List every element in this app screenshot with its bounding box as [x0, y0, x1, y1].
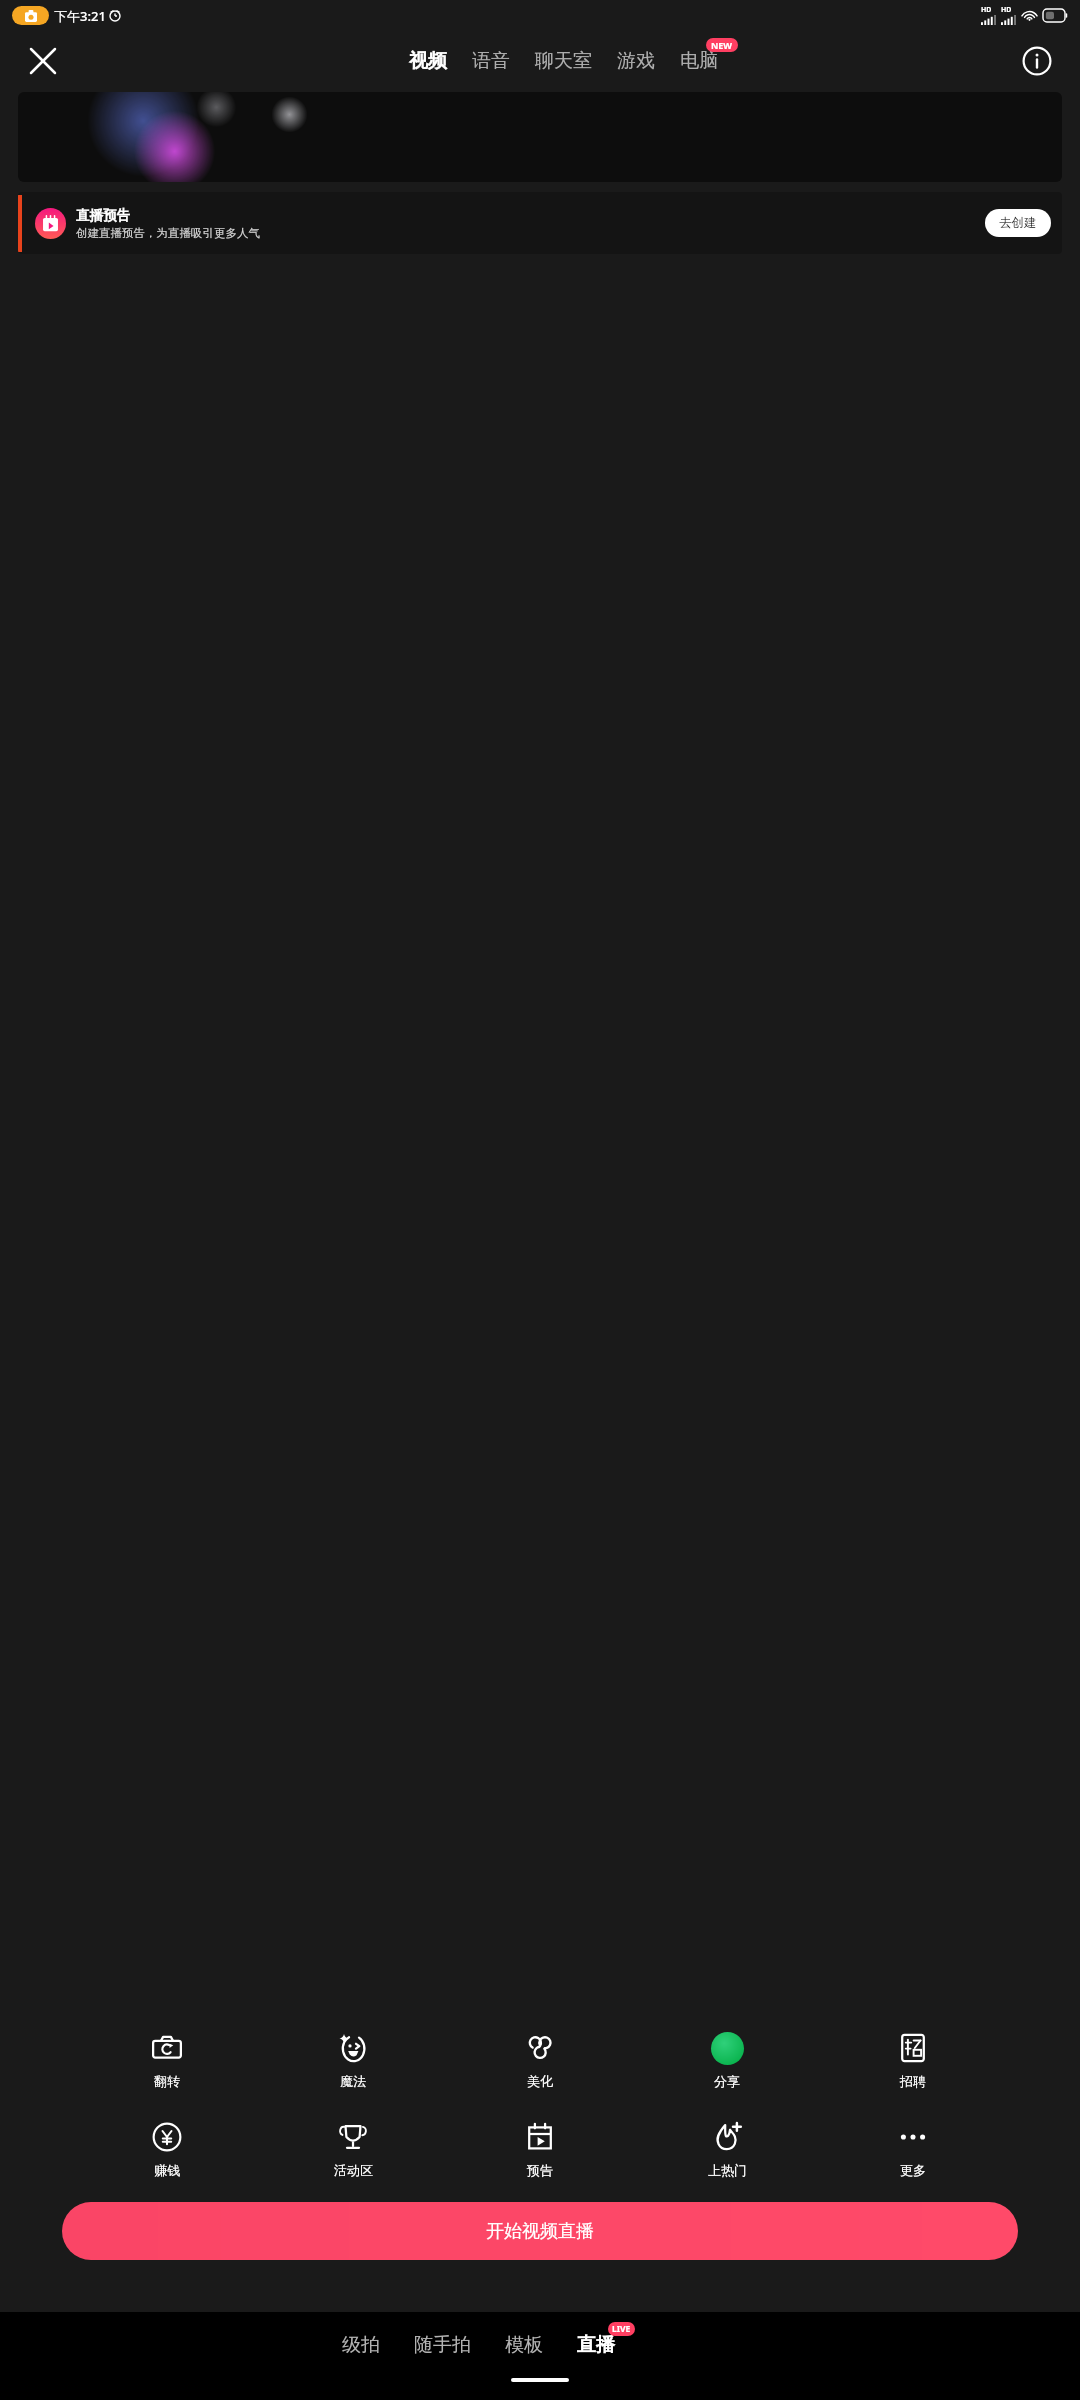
button[interactable]: 魔法 — [319, 2028, 387, 2091]
button[interactable]: 赚钱 — [133, 2117, 201, 2180]
button[interactable]: 预告 — [506, 2117, 574, 2180]
button[interactable]: 翻转 — [133, 2028, 201, 2091]
staticText: 语音 — [472, 49, 510, 73]
staticText: NEW — [711, 39, 733, 51]
staticText: 美化 — [527, 2073, 553, 2089]
staticText: 视频 — [409, 49, 447, 73]
button[interactable]: 直播 — [574, 2325, 618, 2365]
button[interactable]: 电脑 — [678, 43, 720, 79]
button[interactable]: 视频 — [407, 43, 449, 79]
button[interactable]: 美化 — [506, 2028, 574, 2091]
staticText: 直播预告 — [76, 207, 130, 224]
staticText: 预告 — [527, 2162, 553, 2178]
button[interactable]: 去创建 — [985, 209, 1051, 237]
staticText: 聊天室 — [535, 49, 592, 73]
staticText: 下午3:21 — [54, 7, 106, 25]
button[interactable]: 更多 — [879, 2117, 947, 2180]
staticText: 模板 — [505, 2333, 543, 2357]
button[interactable]: 模板 — [502, 2325, 546, 2365]
button[interactable]: 招聘 — [879, 2028, 947, 2091]
staticText: 招聘 — [900, 2073, 926, 2089]
staticText: 分享 — [714, 2073, 740, 2089]
staticText: 级拍 — [342, 2333, 380, 2357]
button[interactable]: 活动区 — [319, 2117, 387, 2180]
staticText: 随手拍 — [414, 2333, 471, 2357]
staticText: 创建直播预告，为直播吸引更多人气 — [76, 226, 260, 240]
staticText: 翻转 — [154, 2073, 180, 2089]
button[interactable]: 上热门 — [693, 2117, 761, 2180]
button[interactable]: 直播预告 — [18, 192, 1062, 254]
staticText: 游戏 — [617, 49, 655, 73]
staticText: 赚钱 — [154, 2162, 180, 2178]
button[interactable]: 随手拍 — [411, 2325, 474, 2365]
staticText: 直播 — [577, 2333, 615, 2357]
button[interactable]: Close — [20, 38, 66, 84]
staticText: 上热门 — [708, 2162, 747, 2178]
staticText: HD — [1001, 5, 1012, 15]
staticText: LIVE — [612, 2323, 631, 2335]
button[interactable]: Info — [1014, 38, 1060, 84]
staticText: 去创建 — [999, 215, 1037, 231]
staticText: 魔法 — [340, 2073, 366, 2089]
staticText: 更多 — [900, 2162, 926, 2178]
button[interactable]: 级拍 — [339, 2325, 383, 2365]
staticText: HD — [981, 5, 992, 15]
staticText: 开始视频直播 — [486, 2220, 594, 2243]
button[interactable]: 游戏 — [615, 43, 657, 79]
button[interactable]: 聊天室 — [533, 43, 594, 79]
button[interactable]: 开始视频直播 — [62, 2202, 1018, 2260]
staticText: 活动区 — [334, 2162, 373, 2178]
button[interactable]: 分享 — [693, 2028, 761, 2091]
button[interactable]: 语音 — [470, 43, 512, 79]
staticText: 电脑 — [680, 49, 718, 73]
